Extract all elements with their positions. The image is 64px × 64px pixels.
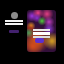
button[interactable] [5, 12, 23, 33]
button[interactable]: Play [35, 38, 44, 43]
button[interactable]: Play [27, 10, 56, 52]
